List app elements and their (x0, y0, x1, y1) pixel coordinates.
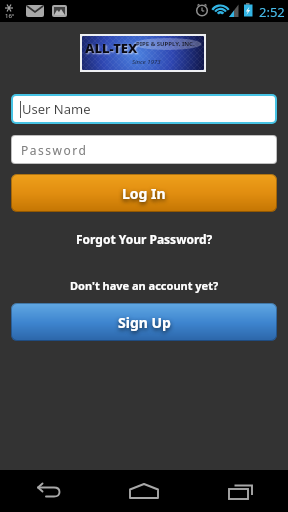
staticText: 2:52 (259, 3, 285, 21)
button[interactable] (96, 470, 192, 512)
button[interactable]: Sign Up (11, 303, 277, 341)
staticText: 16° (5, 12, 15, 20)
button[interactable]: User Name (13, 96, 275, 122)
button[interactable] (0, 470, 96, 512)
button[interactable]: Password (12, 136, 276, 163)
staticText: Since 1973 (132, 58, 161, 66)
staticText: ALL-TEX (85, 39, 138, 57)
button[interactable] (192, 470, 288, 512)
staticText: User Name (22, 100, 91, 118)
staticText: PIPE & SUPPLY, INC. (136, 40, 195, 48)
staticText: Don't have an account yet? (70, 278, 219, 293)
button[interactable]: Forgot Your Password? (0, 230, 288, 248)
staticText: Password (21, 142, 88, 158)
staticText: Sign Up (118, 313, 171, 332)
staticText: Log In (122, 184, 166, 203)
staticText: Forgot Your Password? (76, 231, 213, 247)
button[interactable]: Log In (11, 174, 277, 212)
